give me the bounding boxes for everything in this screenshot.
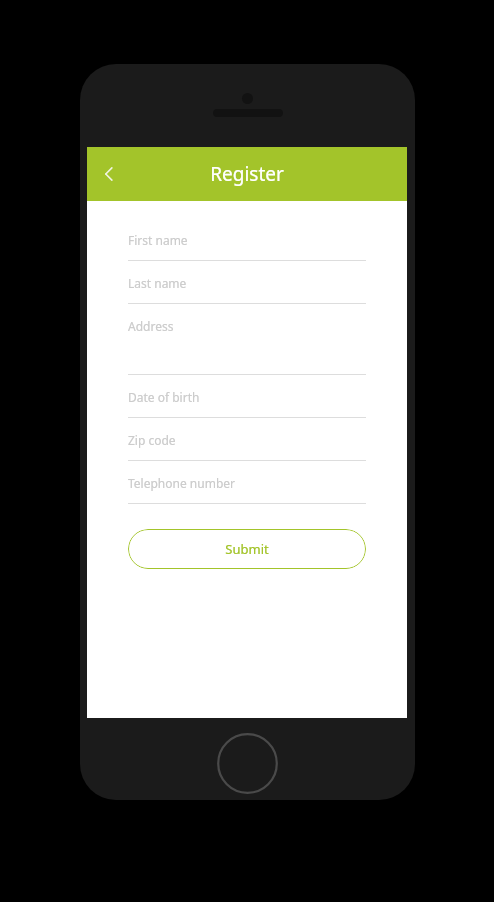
staticText: Telephone number <box>128 475 235 491</box>
staticText: First name <box>128 232 188 248</box>
button[interactable]: Telephone number <box>128 475 366 504</box>
button[interactable]: Last name <box>128 275 366 304</box>
button[interactable]: First name <box>128 232 366 261</box>
button[interactable]: Zip code <box>128 432 366 461</box>
staticText: Zip code <box>128 432 176 448</box>
button[interactable]: Home <box>217 733 278 794</box>
button[interactable]: Address <box>128 318 366 375</box>
staticText: Date of birth <box>128 389 200 405</box>
button[interactable]: Date of birth <box>128 389 366 418</box>
staticText: Last name <box>128 275 187 291</box>
button[interactable]: Submit <box>128 529 366 569</box>
staticText: Address <box>128 318 174 334</box>
button[interactable]: Back <box>87 152 131 196</box>
staticText: Submit <box>225 540 269 558</box>
staticText: Register <box>210 161 284 187</box>
